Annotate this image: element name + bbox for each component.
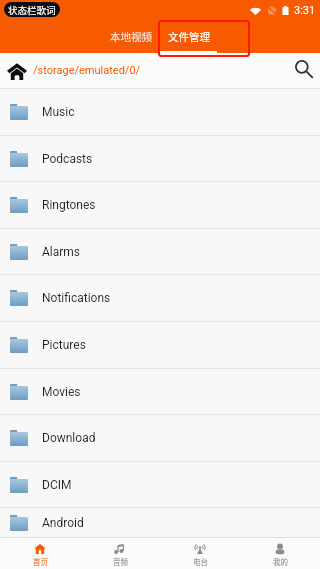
staticText: Pictures [42,338,86,352]
staticText: Alarms [42,245,81,259]
staticText: Android [42,516,84,530]
staticText: 首页 [33,556,48,567]
button[interactable]: Ringtones [0,182,320,228]
staticText: 本地视频 [110,29,152,44]
button[interactable]: Music [0,89,320,135]
button[interactable]: Search [291,56,317,82]
button[interactable]: 我的 [240,538,320,569]
button[interactable]: Home directory [5,59,29,83]
staticText: 电台 [193,556,208,567]
staticText: Movies [42,385,81,399]
button[interactable]: Podcasts [0,136,320,181]
staticText: Ringtones [42,198,96,212]
staticText: Podcasts [42,152,93,166]
button[interactable]: 本地视频 [101,25,160,47]
staticText: Notifications [42,291,111,305]
staticText: Download [42,431,96,445]
staticText: /storage/emulated/0/ [33,64,141,77]
staticText: Music [42,105,75,119]
button[interactable]: 文件管理 [159,25,218,47]
staticText: 我的 [273,556,288,567]
button[interactable]: Movies [0,369,320,414]
staticText: 状态栏歌词 [8,3,56,17]
button[interactable]: DCIM [0,462,320,507]
button[interactable]: 状态栏歌词 [4,2,60,17]
button[interactable]: Notifications [0,275,320,321]
button[interactable]: 首页 [0,538,80,569]
button[interactable]: 音频 [80,538,160,569]
staticText: 3:31 [294,4,316,17]
button[interactable]: Alarms [0,229,320,274]
staticText: 文件管理 [168,29,210,44]
button[interactable]: 电台 [160,538,240,569]
staticText: DCIM [42,478,72,492]
button[interactable]: Download [0,415,320,461]
button[interactable]: Android [0,508,320,537]
button[interactable]: Pictures [0,322,320,368]
staticText: 音频 [113,556,128,567]
